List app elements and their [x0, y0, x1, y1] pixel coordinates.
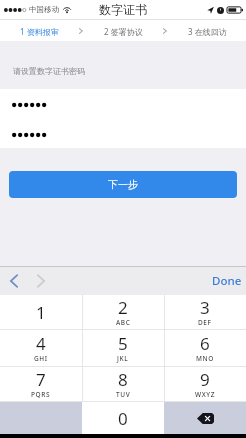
staticText: 5 [118, 332, 128, 355]
button[interactable]: 5 [82, 330, 164, 366]
button[interactable]: 4 [0, 330, 82, 366]
staticText: 1 资料报审 [20, 26, 59, 37]
staticText: 中国移动 [29, 5, 59, 14]
staticText: 6 [200, 332, 210, 355]
button[interactable]: 2 [82, 295, 164, 329]
staticText: 下一步 [108, 178, 138, 191]
staticText: 0 [118, 407, 128, 430]
button[interactable]: 1 资料报审 [0, 20, 78, 41]
staticText: ABC [116, 318, 131, 327]
staticText: 1 [36, 301, 46, 324]
button[interactable]: 2 签署协议 [84, 20, 162, 41]
staticText: 7 [36, 368, 46, 391]
button[interactable] [0, 119, 246, 148]
staticText: 2 签署协议 [104, 26, 143, 37]
button[interactable]: 3 在线回访 [168, 20, 246, 41]
staticText: DEF [198, 318, 212, 327]
button[interactable]: 3 [164, 295, 246, 329]
staticText: 请设置数字证书密码 [13, 66, 85, 76]
button[interactable]: Done [202, 270, 246, 292]
staticText: 8 [118, 368, 128, 391]
staticText: 3 在线回访 [188, 26, 227, 37]
staticText: 数字证书 [99, 2, 147, 17]
button[interactable]: Previous field [4, 269, 24, 293]
staticText: Done [212, 273, 242, 289]
button[interactable]: Next field [31, 269, 51, 293]
staticText: WXYZ [195, 390, 216, 399]
button[interactable]: 6 [164, 330, 246, 366]
staticText: JKL [117, 354, 129, 363]
staticText: 2 [118, 296, 128, 319]
staticText: MNO [196, 354, 214, 363]
staticText: 9 [200, 368, 210, 391]
button[interactable]: 7 [0, 367, 82, 401]
staticText: TUV [116, 390, 131, 399]
button[interactable]: 9 [164, 367, 246, 401]
button[interactable] [0, 89, 246, 119]
button[interactable]: 0 [82, 402, 164, 434]
button[interactable]: Delete [164, 402, 246, 434]
staticText: 4 [36, 332, 46, 355]
button[interactable]: 1 [0, 295, 82, 329]
button[interactable]: 8 [82, 367, 164, 401]
button[interactable]: 下一步 [9, 171, 237, 198]
staticText: 3 [200, 296, 210, 319]
staticText: PQRS [31, 390, 51, 399]
staticText: GHI [34, 354, 48, 363]
